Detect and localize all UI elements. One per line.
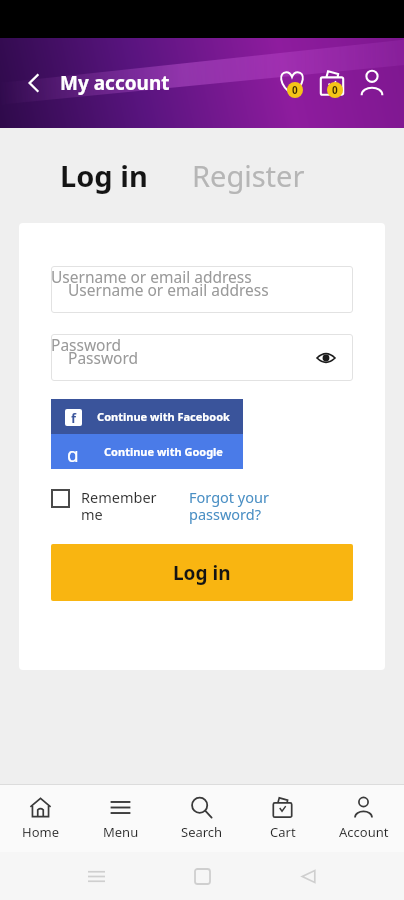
staticText: Log in [173,560,231,586]
button[interactable]: Account [323,790,404,847]
staticText: Forgot your password? [189,487,289,524]
staticText: Cart [270,823,296,841]
staticText: Password [68,347,139,368]
staticText: g [67,442,79,462]
staticText: Log in [60,156,148,195]
button[interactable]: Cart [312,63,352,103]
button[interactable]: Show password [313,345,339,371]
button[interactable]: Wishlist [272,63,312,103]
button[interactable]: Register [190,150,307,201]
button[interactable]: Back [291,859,325,893]
button[interactable]: Password [51,334,353,381]
staticText: Remember me [81,487,171,524]
staticText: My account [60,70,170,96]
button[interactable]: Log in [58,150,150,201]
staticText: Password [51,334,122,355]
staticText: Username or email address [51,266,252,287]
button[interactable]: Home [185,859,219,893]
button[interactable]: Username or email address [51,266,353,313]
staticText: 0 [332,83,338,97]
staticText: Username or email address [68,279,269,300]
button[interactable]: Cart [242,790,323,847]
staticText: Register [192,156,305,195]
staticText: 0 [292,83,298,97]
button[interactable]: Forgot your password? [189,487,289,524]
button[interactable]: Recents [79,859,113,893]
button[interactable]: Search [161,790,242,847]
staticText: Search [181,823,223,841]
button[interactable]: Back [14,63,54,103]
button[interactable]: Log in [51,544,353,601]
button[interactable]: Home [0,790,80,847]
button[interactable]: g [51,434,243,469]
button[interactable]: f [51,399,243,434]
staticText: Account [339,823,389,841]
button[interactable]: Menu [80,790,161,847]
button[interactable]: Account [352,63,392,103]
staticText: Continue with Google [104,444,223,459]
staticText: Home [22,823,59,841]
button[interactable]: Remember me [51,487,175,524]
staticText: Continue with Facebook [97,409,230,424]
staticText: f [71,409,77,426]
staticText: Menu [103,823,139,841]
